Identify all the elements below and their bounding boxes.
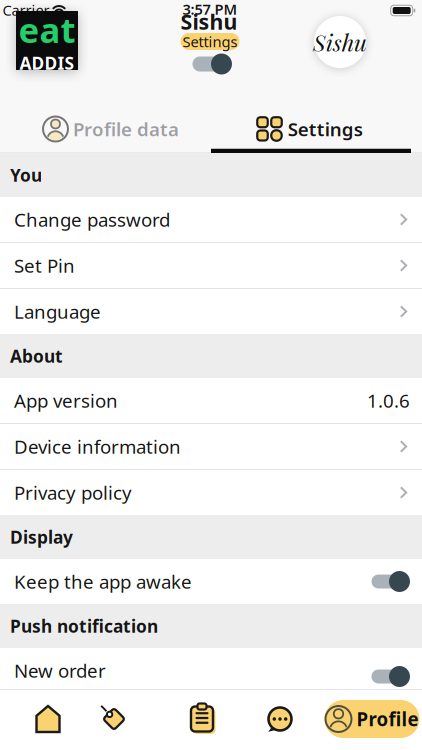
button[interactable]: Profile [324, 700, 419, 738]
staticText: Device information [14, 434, 181, 459]
button[interactable]: Profile data [43, 116, 179, 141]
staticText: 3:57 PM [182, 0, 237, 19]
button[interactable]: Toggle [190, 53, 232, 74]
staticText: Set Pin [14, 253, 75, 278]
staticText: Display [10, 525, 73, 548]
button[interactable]: Offers [100, 705, 128, 733]
staticText: eat [18, 6, 75, 52]
staticText: About [10, 344, 63, 367]
button[interactable]: Device information [0, 424, 422, 469]
staticText: Profile data [73, 117, 179, 141]
staticText: Sishu [180, 7, 237, 36]
staticText: App version [14, 388, 118, 413]
staticText: Settings [288, 117, 363, 141]
staticText: Language [14, 299, 101, 324]
staticText: Profile [356, 707, 418, 731]
button[interactable]: Set Pin [0, 243, 422, 288]
button[interactable]: App version [0, 378, 422, 423]
staticText: ADDIS [19, 51, 74, 74]
staticText: Push notification [10, 614, 158, 637]
button[interactable]: Settings [180, 33, 239, 50]
staticText: Change password [14, 207, 170, 232]
button[interactable]: Change password [0, 197, 422, 242]
button[interactable]: New order [0, 648, 422, 693]
staticText: Sishu [313, 27, 367, 57]
button[interactable]: Orders [188, 704, 215, 734]
button[interactable]: Keep the app awake [0, 559, 422, 604]
staticText: Privacy policy [14, 480, 132, 505]
button[interactable]: Settings [257, 117, 363, 141]
button[interactable]: Chat [266, 705, 293, 732]
button[interactable]: Privacy policy [0, 470, 422, 515]
staticText: Carrier [2, 0, 49, 20]
staticText: You [10, 163, 42, 186]
button[interactable]: Language [0, 289, 422, 334]
staticText: Keep the app awake [14, 569, 192, 594]
staticText: 1.0.6 [367, 388, 410, 413]
staticText: Settings [182, 32, 237, 51]
button[interactable]: Home [35, 705, 60, 733]
staticText: New order [14, 658, 106, 683]
